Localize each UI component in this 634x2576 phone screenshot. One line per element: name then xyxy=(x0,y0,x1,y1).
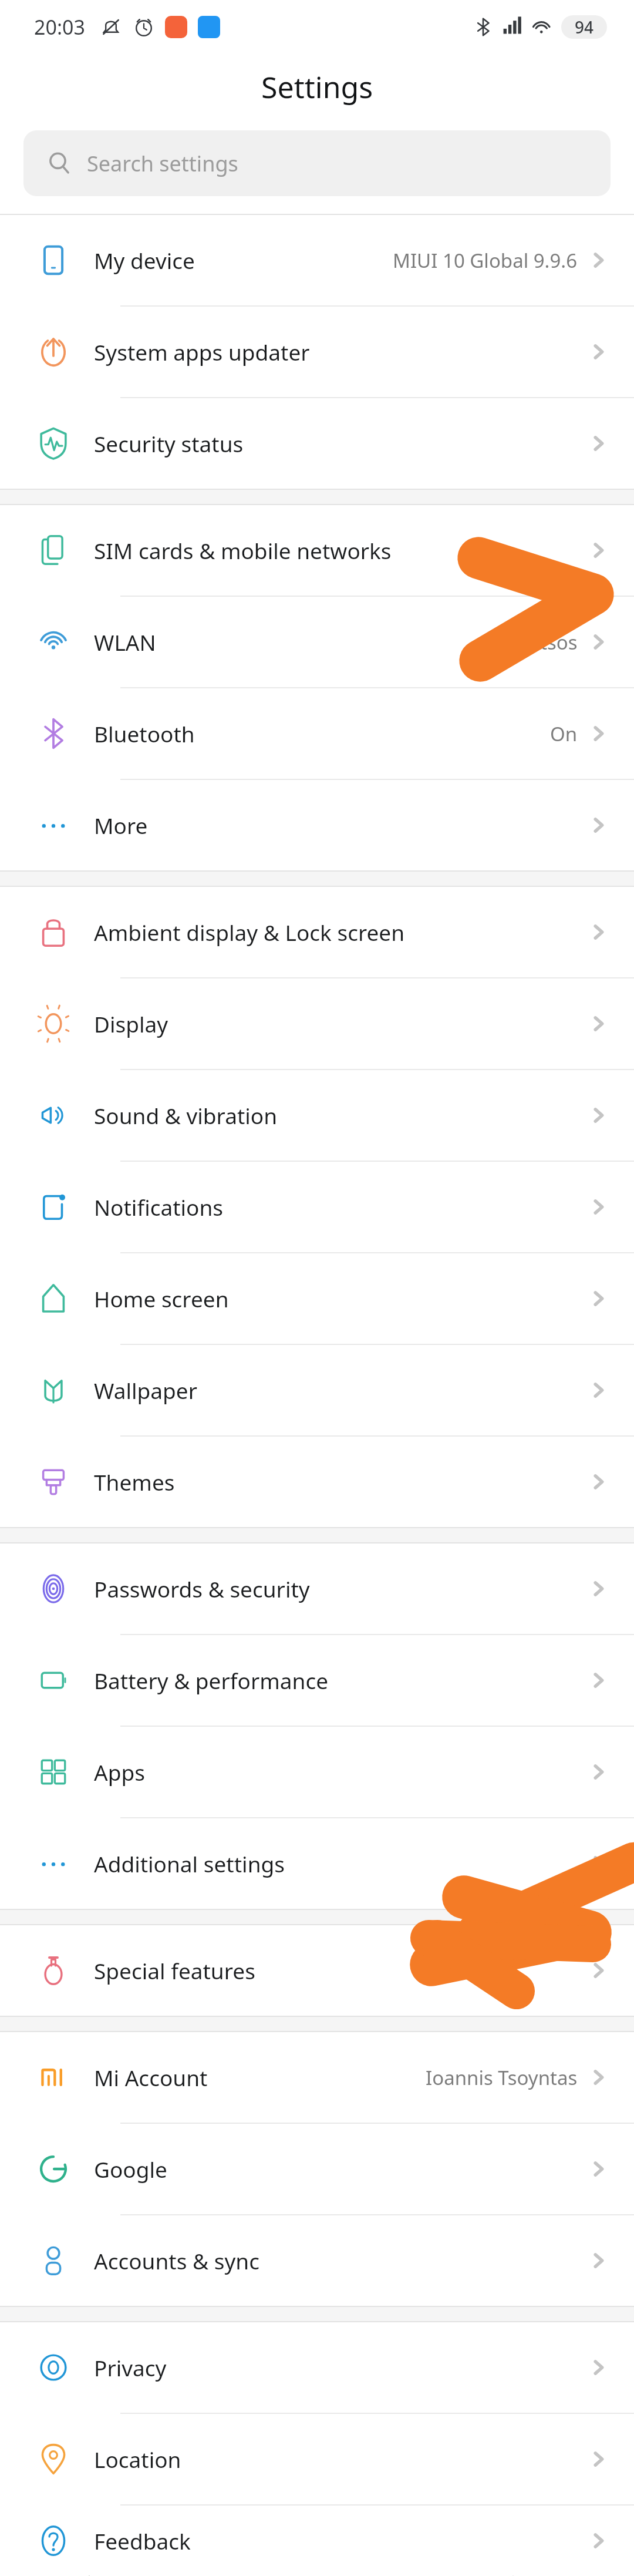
button[interactable]: System apps updater xyxy=(0,307,634,397)
button[interactable]: Special features xyxy=(0,1925,634,2016)
staticText: Feedback xyxy=(94,2526,191,2555)
button[interactable]: Location xyxy=(0,2414,634,2504)
staticText: Settings xyxy=(261,67,373,107)
staticText: Display xyxy=(94,1009,168,1038)
staticText: Battery & performance xyxy=(94,1666,329,1695)
staticText: Special features xyxy=(94,1956,255,1985)
button[interactable]: Additional settings xyxy=(0,1818,634,1909)
staticText: My device xyxy=(94,246,195,275)
staticText: WLAN xyxy=(94,627,156,657)
button[interactable]: Battery & performance xyxy=(0,1635,634,1726)
button[interactable]: Passwords & security xyxy=(0,1543,634,1634)
staticText: Additional settings xyxy=(94,1849,285,1878)
staticText: Ambient display & Lock screen xyxy=(94,917,405,947)
button[interactable]: Home screen xyxy=(0,1253,634,1344)
staticText: Wallpaper xyxy=(94,1376,197,1405)
button[interactable]: Themes xyxy=(0,1437,634,1527)
staticText: MIUI 10 Global 9.9.6 xyxy=(393,247,578,274)
staticText: Sound & vibration xyxy=(94,1101,278,1130)
staticText: Security status xyxy=(94,429,244,458)
button[interactable]: Security status xyxy=(0,398,634,489)
staticText: SIM cards & mobile networks xyxy=(94,536,392,565)
button[interactable]: Search settings xyxy=(23,130,611,196)
staticText: System apps updater xyxy=(94,337,310,366)
button[interactable]: Wallpaper xyxy=(0,1345,634,1435)
button[interactable]: Feedback xyxy=(0,2506,634,2576)
staticText: On xyxy=(550,721,578,747)
staticText: Passwords & security xyxy=(94,1574,310,1603)
button[interactable]: More xyxy=(0,780,634,870)
button[interactable]: Sound & vibration xyxy=(0,1070,634,1161)
button[interactable]: WLAN xyxy=(0,597,634,687)
staticText: Search settings xyxy=(87,149,238,178)
button[interactable]: My device xyxy=(0,215,634,305)
button[interactable]: Ambient display & Lock screen xyxy=(0,887,634,977)
staticText: Google xyxy=(94,2154,167,2184)
button[interactable]: Privacy xyxy=(0,2322,634,2413)
button[interactable]: SIM cards & mobile networks xyxy=(0,505,634,596)
button[interactable]: Mi Account xyxy=(0,2032,634,2123)
staticText: Themes xyxy=(94,1467,175,1496)
button[interactable]: Apps xyxy=(0,1727,634,1817)
staticText: kitsos xyxy=(525,629,578,655)
button[interactable]: Bluetooth xyxy=(0,688,634,779)
staticText: More xyxy=(94,811,148,840)
staticText: Privacy xyxy=(94,2353,167,2382)
staticText: Ioannis Tsoyntas xyxy=(426,2064,578,2091)
button[interactable]: Google xyxy=(0,2124,634,2214)
staticText: Notifications xyxy=(94,1192,224,1222)
staticText: Home screen xyxy=(94,1284,229,1313)
button[interactable]: Notifications xyxy=(0,1162,634,1252)
staticText: Bluetooth xyxy=(94,719,195,748)
staticText: Apps xyxy=(94,1757,145,1787)
button[interactable]: Accounts & sync xyxy=(0,2215,634,2306)
staticText: 94 xyxy=(575,16,594,38)
staticText: Accounts & sync xyxy=(94,2246,259,2275)
staticText: 20:03 xyxy=(34,14,85,41)
staticText: Location xyxy=(94,2444,181,2474)
button[interactable]: Display xyxy=(0,978,634,1069)
staticText: Mi Account xyxy=(94,2063,208,2092)
